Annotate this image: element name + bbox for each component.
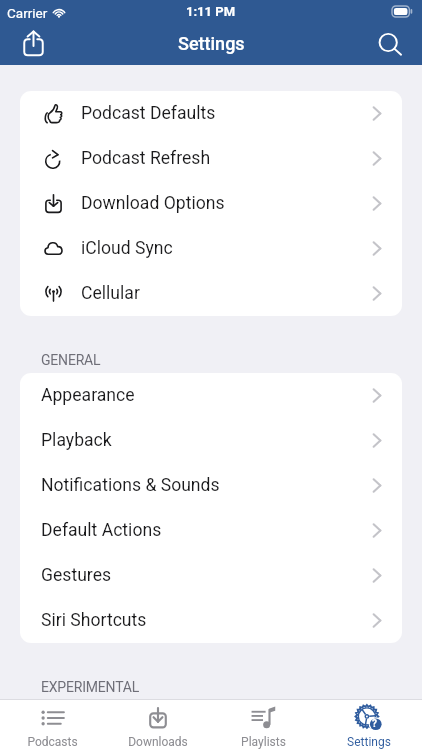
staticText: GENERAL [41, 352, 101, 368]
button[interactable]: Gestures [20, 553, 402, 598]
staticText: Siri Shortcuts [41, 610, 147, 631]
staticText: 1:11 PM [186, 4, 236, 19]
button[interactable]: Playlists [210, 700, 316, 750]
staticText: Appearance [41, 385, 135, 406]
button[interactable]: iCloud Sync [20, 226, 402, 271]
button[interactable]: Download Options [20, 181, 402, 226]
staticText: Podcast Refresh [81, 148, 211, 169]
button[interactable]: Appearance [20, 373, 402, 418]
button[interactable]: Cellular [20, 271, 402, 316]
button[interactable]: Playback [20, 418, 402, 463]
button[interactable]: Podcast Defaults [20, 91, 402, 136]
button[interactable]: Notifications & Sounds [20, 463, 402, 508]
button[interactable]: ? [316, 700, 422, 750]
staticText: Playback [41, 430, 112, 451]
button[interactable]: Siri Shortcuts [20, 598, 402, 643]
staticText: Default Actions [41, 520, 162, 541]
button[interactable]: Share [13, 26, 53, 65]
button[interactable]: Default Actions [20, 508, 402, 553]
staticText: Cellular [81, 283, 140, 304]
staticText: Download Options [81, 193, 225, 214]
button[interactable]: Podcasts [0, 700, 105, 750]
staticText: Podcasts [27, 735, 78, 749]
staticText: Gestures [41, 565, 112, 586]
staticText: Settings [347, 735, 391, 749]
staticText: iCloud Sync [81, 238, 173, 259]
staticText: Carrier [7, 5, 48, 21]
staticText: Playlists [241, 735, 286, 749]
staticText: ? [372, 718, 377, 730]
staticText: Downloads [128, 735, 188, 749]
staticText: Notifications & Sounds [41, 475, 220, 496]
staticText: Settings [178, 33, 245, 54]
staticText: Podcast Defaults [81, 103, 216, 124]
button[interactable]: Podcast Refresh [20, 136, 402, 181]
button[interactable]: Search [371, 26, 411, 65]
staticText: EXPERIMENTAL [41, 679, 140, 695]
button[interactable]: Downloads [105, 700, 210, 750]
